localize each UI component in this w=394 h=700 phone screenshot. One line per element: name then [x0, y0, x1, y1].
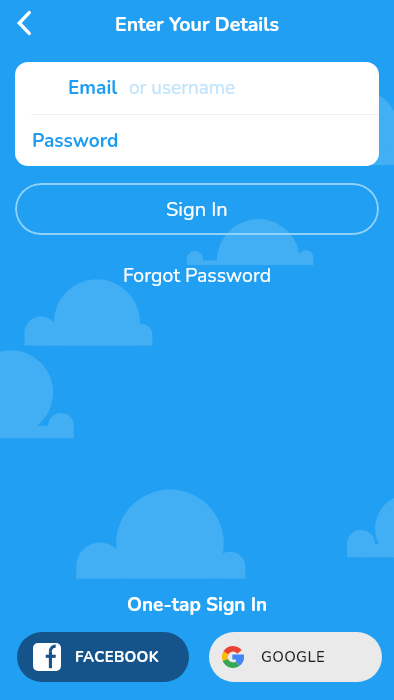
button[interactable]: Password: [15, 115, 379, 166]
button[interactable]: Back: [4, 3, 44, 43]
staticText: Sign In: [166, 196, 228, 223]
staticText: Email: [68, 75, 118, 101]
staticText: GOOGLE: [261, 647, 326, 667]
staticText: One-tap Sign In: [127, 592, 268, 618]
staticText: or username: [129, 75, 236, 101]
staticText: Password: [32, 128, 119, 154]
button[interactable]: Forgot Password: [123, 262, 272, 289]
button[interactable]: FACEBOOK: [17, 632, 189, 682]
staticText: FACEBOOK: [75, 647, 159, 667]
button[interactable]: GOOGLE: [209, 632, 382, 682]
button[interactable]: Sign In: [15, 183, 379, 235]
staticText: Enter Your Details: [115, 11, 279, 38]
button[interactable]: Email: [15, 62, 379, 114]
